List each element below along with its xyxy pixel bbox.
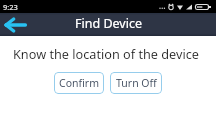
staticText: Find Device — [75, 15, 142, 32]
staticText: Know the location of the device — [13, 45, 199, 62]
staticText: 9:23 — [3, 2, 18, 12]
button[interactable]: Back — [0, 13, 30, 36]
staticText: Confirm — [59, 76, 99, 90]
button[interactable]: Confirm — [54, 72, 104, 94]
staticText: Turn Off — [116, 76, 157, 90]
button[interactable]: Turn Off — [110, 72, 162, 94]
